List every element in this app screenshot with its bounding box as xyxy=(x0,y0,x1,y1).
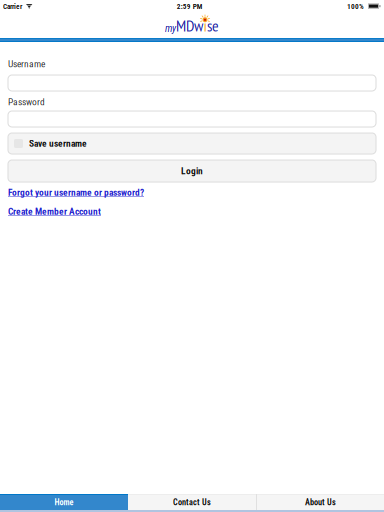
button[interactable]: Save username xyxy=(8,133,376,154)
staticText: i xyxy=(203,15,206,36)
staticText: Username xyxy=(8,58,45,70)
staticText: Password xyxy=(8,96,45,108)
staticText: 2:59 PM xyxy=(177,2,203,11)
button[interactable]: About Us xyxy=(257,494,384,510)
staticText: my xyxy=(165,23,176,34)
button[interactable]: Home xyxy=(0,494,128,510)
button[interactable]: Create Member Account xyxy=(8,206,376,217)
staticText: Save username xyxy=(29,138,87,149)
button[interactable]: Contact Us xyxy=(128,494,256,510)
staticText: 100% xyxy=(347,2,364,11)
staticText: Forgot your username or password? xyxy=(8,187,144,198)
staticText: Contact Us xyxy=(173,498,211,507)
staticText: MDw xyxy=(176,15,203,36)
staticText: se xyxy=(207,15,219,36)
staticText: About Us xyxy=(305,498,336,507)
button[interactable]: Login xyxy=(8,160,376,182)
staticText: Home xyxy=(54,498,73,507)
staticText: Carrier xyxy=(3,2,22,11)
staticText: Login xyxy=(181,165,203,177)
staticText: Create Member Account xyxy=(8,206,101,217)
button[interactable]: Forgot your username or password? xyxy=(8,187,376,198)
